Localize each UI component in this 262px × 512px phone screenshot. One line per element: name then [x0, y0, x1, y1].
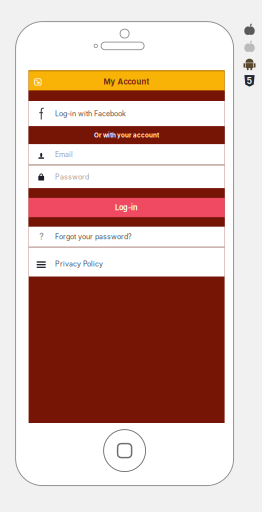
staticText: 5: [246, 75, 252, 86]
staticText: ?: [39, 232, 43, 242]
staticText: Log-in: [115, 203, 138, 212]
button[interactable]: Log-in with Facebook: [29, 101, 225, 126]
staticText: Email: [55, 150, 73, 159]
button[interactable]: Log-in: [29, 198, 225, 217]
button[interactable]: Menu: [29, 70, 47, 91]
staticText: Privacy Policy: [55, 260, 103, 268]
button[interactable]: Email: [29, 144, 225, 165]
staticText: Forgot your password?: [55, 232, 132, 241]
button[interactable]: Password: [29, 165, 225, 188]
button[interactable]: Privacy Policy: [29, 248, 225, 276]
staticText: Password: [55, 173, 89, 181]
staticText: My Account: [104, 77, 150, 86]
button[interactable]: ?: [29, 227, 225, 247]
staticText: Or with your account: [94, 131, 159, 139]
staticText: Log-in with Facebook: [55, 109, 126, 118]
